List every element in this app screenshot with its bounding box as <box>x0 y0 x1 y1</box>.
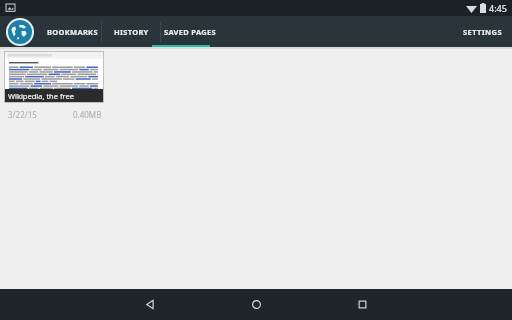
staticText: SAVED PAGES <box>164 27 216 37</box>
button[interactable]: Browser home <box>6 18 34 46</box>
staticText: SETTINGS <box>463 27 502 37</box>
staticText: BOOKMARKS <box>47 27 98 37</box>
staticText: Wikipedia, the free encycloped… <box>8 91 101 101</box>
button[interactable]: Recent apps <box>340 289 384 320</box>
button[interactable]: SETTINGS <box>453 16 512 47</box>
button[interactable]: Back <box>128 289 172 320</box>
button[interactable]: Home <box>234 289 278 320</box>
staticText: HISTORY <box>114 27 149 37</box>
button[interactable]: Wikipedia, the free encycloped… <box>4 51 108 120</box>
button[interactable]: SAVED PAGES <box>161 16 219 47</box>
staticText: 4:45 <box>489 2 507 14</box>
button[interactable]: BOOKMARKS <box>44 16 101 47</box>
staticText: 0.40MB <box>73 109 102 120</box>
staticText: 3/22/15 <box>8 109 37 120</box>
button[interactable]: HISTORY <box>102 16 160 47</box>
